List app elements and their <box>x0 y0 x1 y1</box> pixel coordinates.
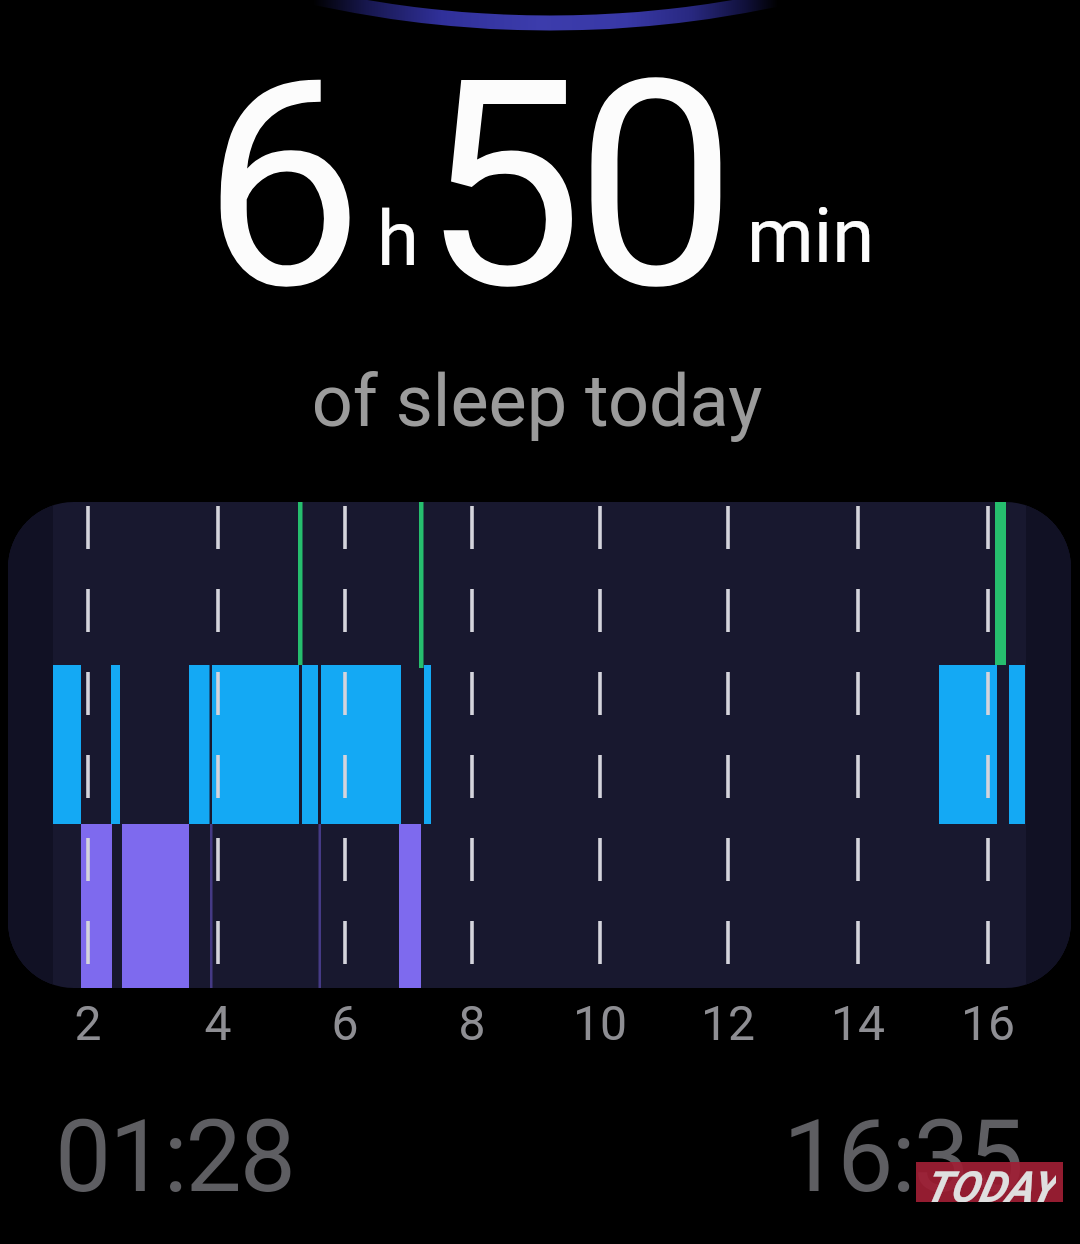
staticText: 2 <box>28 995 148 1051</box>
staticText: 01:28 <box>55 1098 295 1215</box>
staticText: h <box>377 194 419 283</box>
staticText: of sleep today <box>0 359 1077 443</box>
staticText: 12 <box>668 995 788 1051</box>
staticText: 16 <box>928 995 1048 1051</box>
button[interactable] <box>8 502 1071 988</box>
staticText: TODAY <box>924 1162 1056 1202</box>
staticText: 4 <box>158 995 278 1051</box>
staticText: min <box>747 191 875 280</box>
staticText: 10 <box>540 995 660 1051</box>
staticText: 6 <box>202 18 364 354</box>
staticText: 16:35 <box>783 1098 1023 1215</box>
staticText: 6 <box>285 995 405 1051</box>
staticText: 50 <box>422 18 729 354</box>
staticText: 14 <box>798 995 918 1051</box>
staticText: 8 <box>412 995 532 1051</box>
